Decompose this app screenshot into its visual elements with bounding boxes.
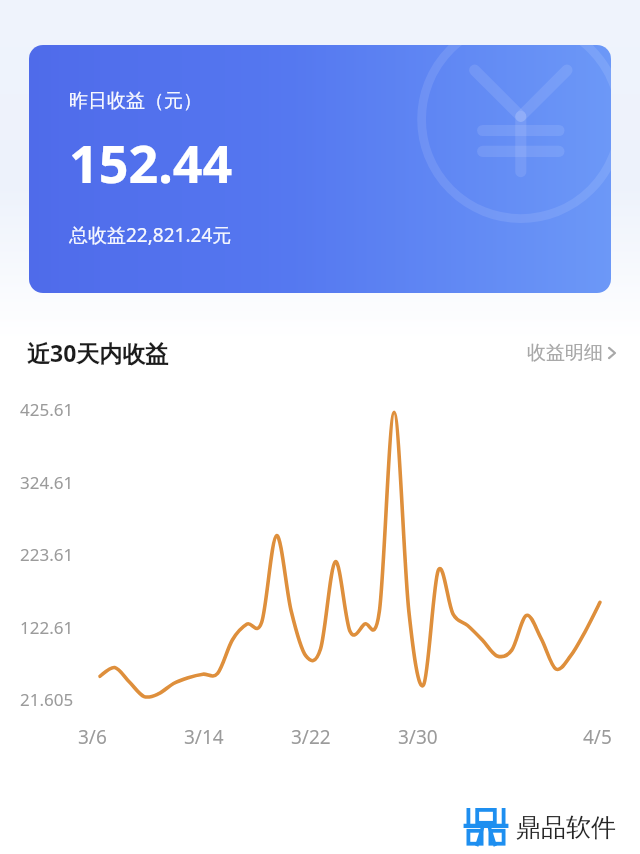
staticText: 152.44 xyxy=(69,127,233,198)
staticText: 425.61 xyxy=(20,398,74,421)
staticText: 近30天内收益 xyxy=(27,337,169,368)
staticText: 鼎品软件 xyxy=(516,812,616,843)
staticText: 3/30 xyxy=(398,724,438,750)
button[interactable]: 收益明细 xyxy=(527,341,618,365)
staticText: 总收益22,821.24元 xyxy=(69,222,232,248)
staticText: 21.605 xyxy=(20,688,74,711)
staticText: 223.61 xyxy=(20,543,74,566)
button[interactable]: 昨日收益（元） xyxy=(29,45,611,293)
staticText: 昨日收益（元） xyxy=(69,89,202,113)
staticText: 324.61 xyxy=(20,471,74,494)
staticText: 收益明细 xyxy=(527,341,603,365)
staticText: 3/6 xyxy=(78,724,107,750)
staticText: 122.61 xyxy=(20,616,74,639)
staticText: 3/14 xyxy=(184,724,224,750)
staticText: 3/22 xyxy=(291,724,331,750)
staticText: 4/5 xyxy=(583,724,612,750)
